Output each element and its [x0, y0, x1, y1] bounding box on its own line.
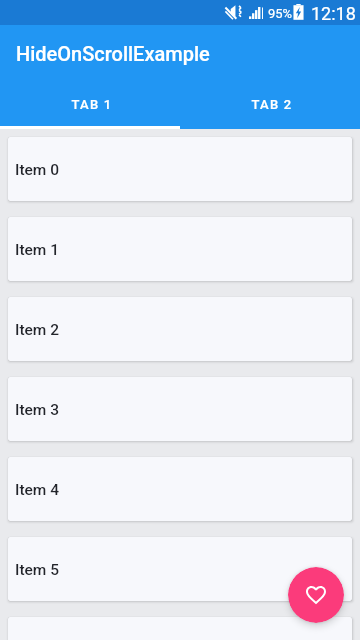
staticText: Item 4 [15, 481, 60, 499]
staticText: 12:18 [311, 3, 356, 24]
button[interactable]: Item 6 [8, 617, 352, 640]
button[interactable]: Item 0 [8, 137, 352, 201]
staticText: Item 2 [15, 321, 60, 339]
button[interactable]: Item 3 [8, 377, 352, 441]
staticText: TAB 1 [71, 97, 113, 112]
button[interactable]: Favorite [288, 567, 344, 623]
button[interactable]: Item 1 [8, 217, 352, 281]
staticText: TAB 2 [251, 97, 293, 112]
button[interactable]: TAB 1 [0, 80, 180, 129]
button[interactable]: TAB 2 [180, 80, 360, 129]
button[interactable]: Item 5 [8, 537, 352, 601]
staticText: Item 5 [15, 561, 60, 579]
staticText: Item 0 [15, 161, 60, 179]
button[interactable]: Item 4 [8, 457, 352, 521]
staticText: Item 3 [15, 401, 60, 419]
button[interactable]: Item 2 [8, 297, 352, 361]
staticText: 95% [268, 6, 293, 21]
staticText: HideOnScrollExample [16, 42, 210, 65]
staticText: Item 1 [15, 241, 60, 259]
